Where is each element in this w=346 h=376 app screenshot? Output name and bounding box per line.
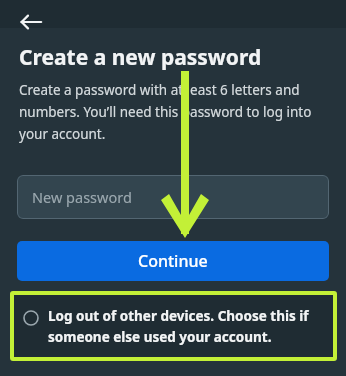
button[interactable]: New password [17, 175, 329, 219]
button[interactable]: Log out of other devices. Choose this if… [14, 295, 333, 357]
button[interactable]: Continue [17, 241, 329, 281]
staticText: Create a new password [19, 43, 262, 72]
staticText: Continue [138, 250, 208, 272]
button[interactable]: Back [12, 2, 52, 42]
staticText: Log out of other devices. Choose this if… [48, 307, 325, 346]
staticText: Create a password with at least 6 letter… [19, 81, 330, 143]
staticText: New password [32, 187, 132, 207]
